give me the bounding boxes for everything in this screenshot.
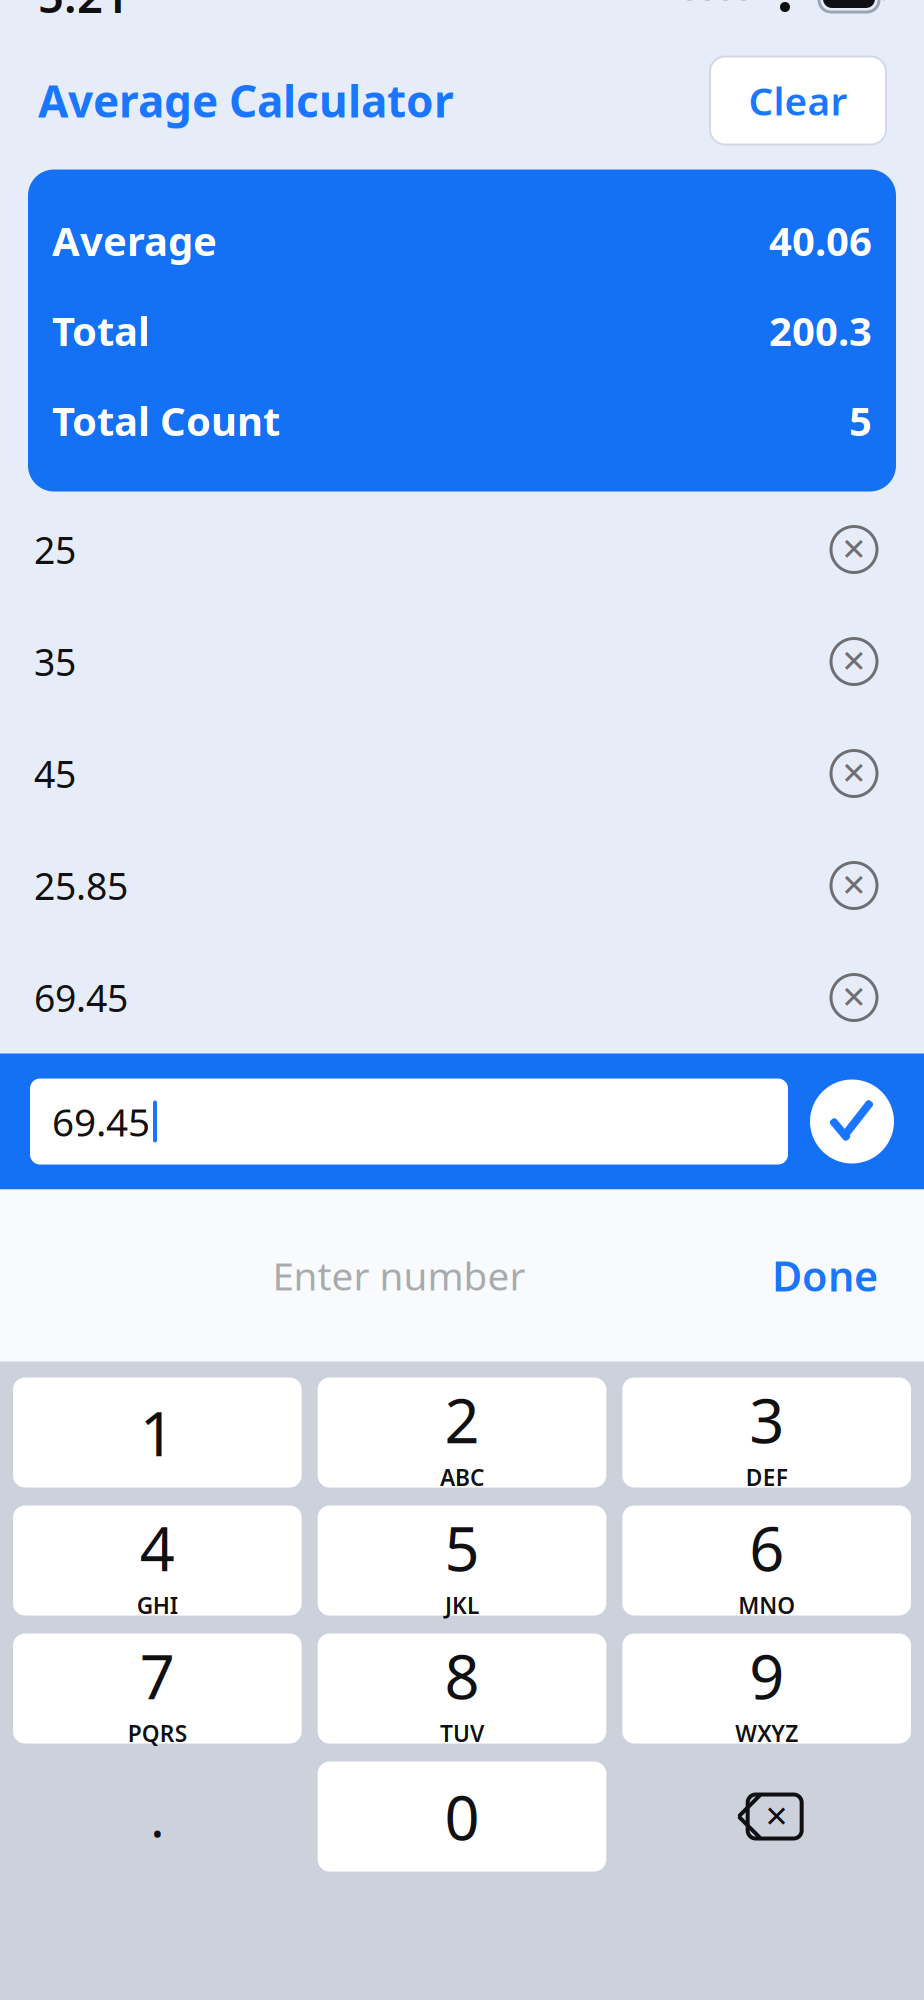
staticText: ✕ xyxy=(841,644,867,679)
staticText: Total Count xyxy=(52,394,280,447)
staticText: ✕ xyxy=(764,1800,789,1833)
button[interactable]: 5 xyxy=(318,1505,606,1615)
button[interactable]: Done xyxy=(762,1234,888,1317)
button[interactable]: 4 xyxy=(13,1505,302,1615)
button[interactable]: 1 xyxy=(13,1377,302,1487)
staticText: 4 xyxy=(140,1507,175,1588)
staticText: 200.3 xyxy=(769,304,872,357)
staticText: TUV xyxy=(440,1718,484,1748)
staticText: Clear xyxy=(748,75,847,126)
button[interactable]: 7 xyxy=(13,1633,302,1743)
staticText: Average xyxy=(52,214,217,267)
button[interactable]: 3 xyxy=(622,1377,911,1487)
staticText: Total xyxy=(52,304,150,357)
staticText: 5:21 xyxy=(38,0,129,26)
button[interactable]: 2 xyxy=(318,1377,606,1487)
button[interactable]: Clear xyxy=(710,56,886,144)
staticText: ✕ xyxy=(841,980,867,1015)
staticText: 35 xyxy=(34,637,76,686)
staticText: 45 xyxy=(34,749,76,798)
staticText: GHI xyxy=(137,1590,178,1620)
button[interactable]: Add number xyxy=(810,1079,894,1163)
staticText: DEF xyxy=(746,1462,788,1492)
button[interactable]: . xyxy=(13,1761,302,1871)
button[interactable]: Delete 25 xyxy=(818,513,890,585)
button[interactable]: 9 xyxy=(622,1633,911,1743)
staticText: 25 xyxy=(34,525,76,574)
staticText: WXYZ xyxy=(735,1718,798,1748)
staticText: ✕ xyxy=(841,756,867,791)
staticText: 25.85 xyxy=(34,861,128,910)
staticText: 5 xyxy=(849,394,872,447)
button[interactable]: Delete 69.45 xyxy=(818,961,890,1033)
button[interactable]: Delete xyxy=(622,1761,911,1871)
staticText: 9 xyxy=(749,1635,784,1716)
staticText: . xyxy=(150,1781,164,1852)
staticText: 69.45 xyxy=(34,973,128,1022)
button[interactable]: Delete 35 xyxy=(818,625,890,697)
staticText: 5 xyxy=(444,1507,479,1588)
staticText: PQRS xyxy=(128,1718,187,1748)
button[interactable]: Delete 25.85 xyxy=(818,849,890,921)
staticText: 1 xyxy=(140,1392,175,1473)
staticText: Average Calculator xyxy=(38,71,454,130)
staticText: 2 xyxy=(444,1379,479,1460)
staticText: ABC xyxy=(440,1462,484,1492)
staticText: 8 xyxy=(444,1635,479,1716)
staticText: Enter number xyxy=(272,1250,525,1301)
staticText: 40.06 xyxy=(769,214,872,267)
staticText: 3 xyxy=(749,1379,784,1460)
staticText: MNO xyxy=(738,1590,795,1620)
button[interactable]: 0 xyxy=(318,1761,606,1871)
staticText: ✕ xyxy=(841,532,867,567)
button[interactable]: 6 xyxy=(622,1505,911,1615)
staticText: 6 xyxy=(749,1507,784,1588)
button[interactable]: 8 xyxy=(318,1633,606,1743)
button[interactable]: Delete 45 xyxy=(818,737,890,809)
staticText: Done xyxy=(772,1248,878,1303)
staticText: JKL xyxy=(445,1590,479,1620)
staticText: 7 xyxy=(140,1635,175,1716)
staticText: 69.45 xyxy=(52,1096,150,1147)
staticText: ✕ xyxy=(841,868,867,903)
staticText: 0 xyxy=(444,1776,479,1857)
